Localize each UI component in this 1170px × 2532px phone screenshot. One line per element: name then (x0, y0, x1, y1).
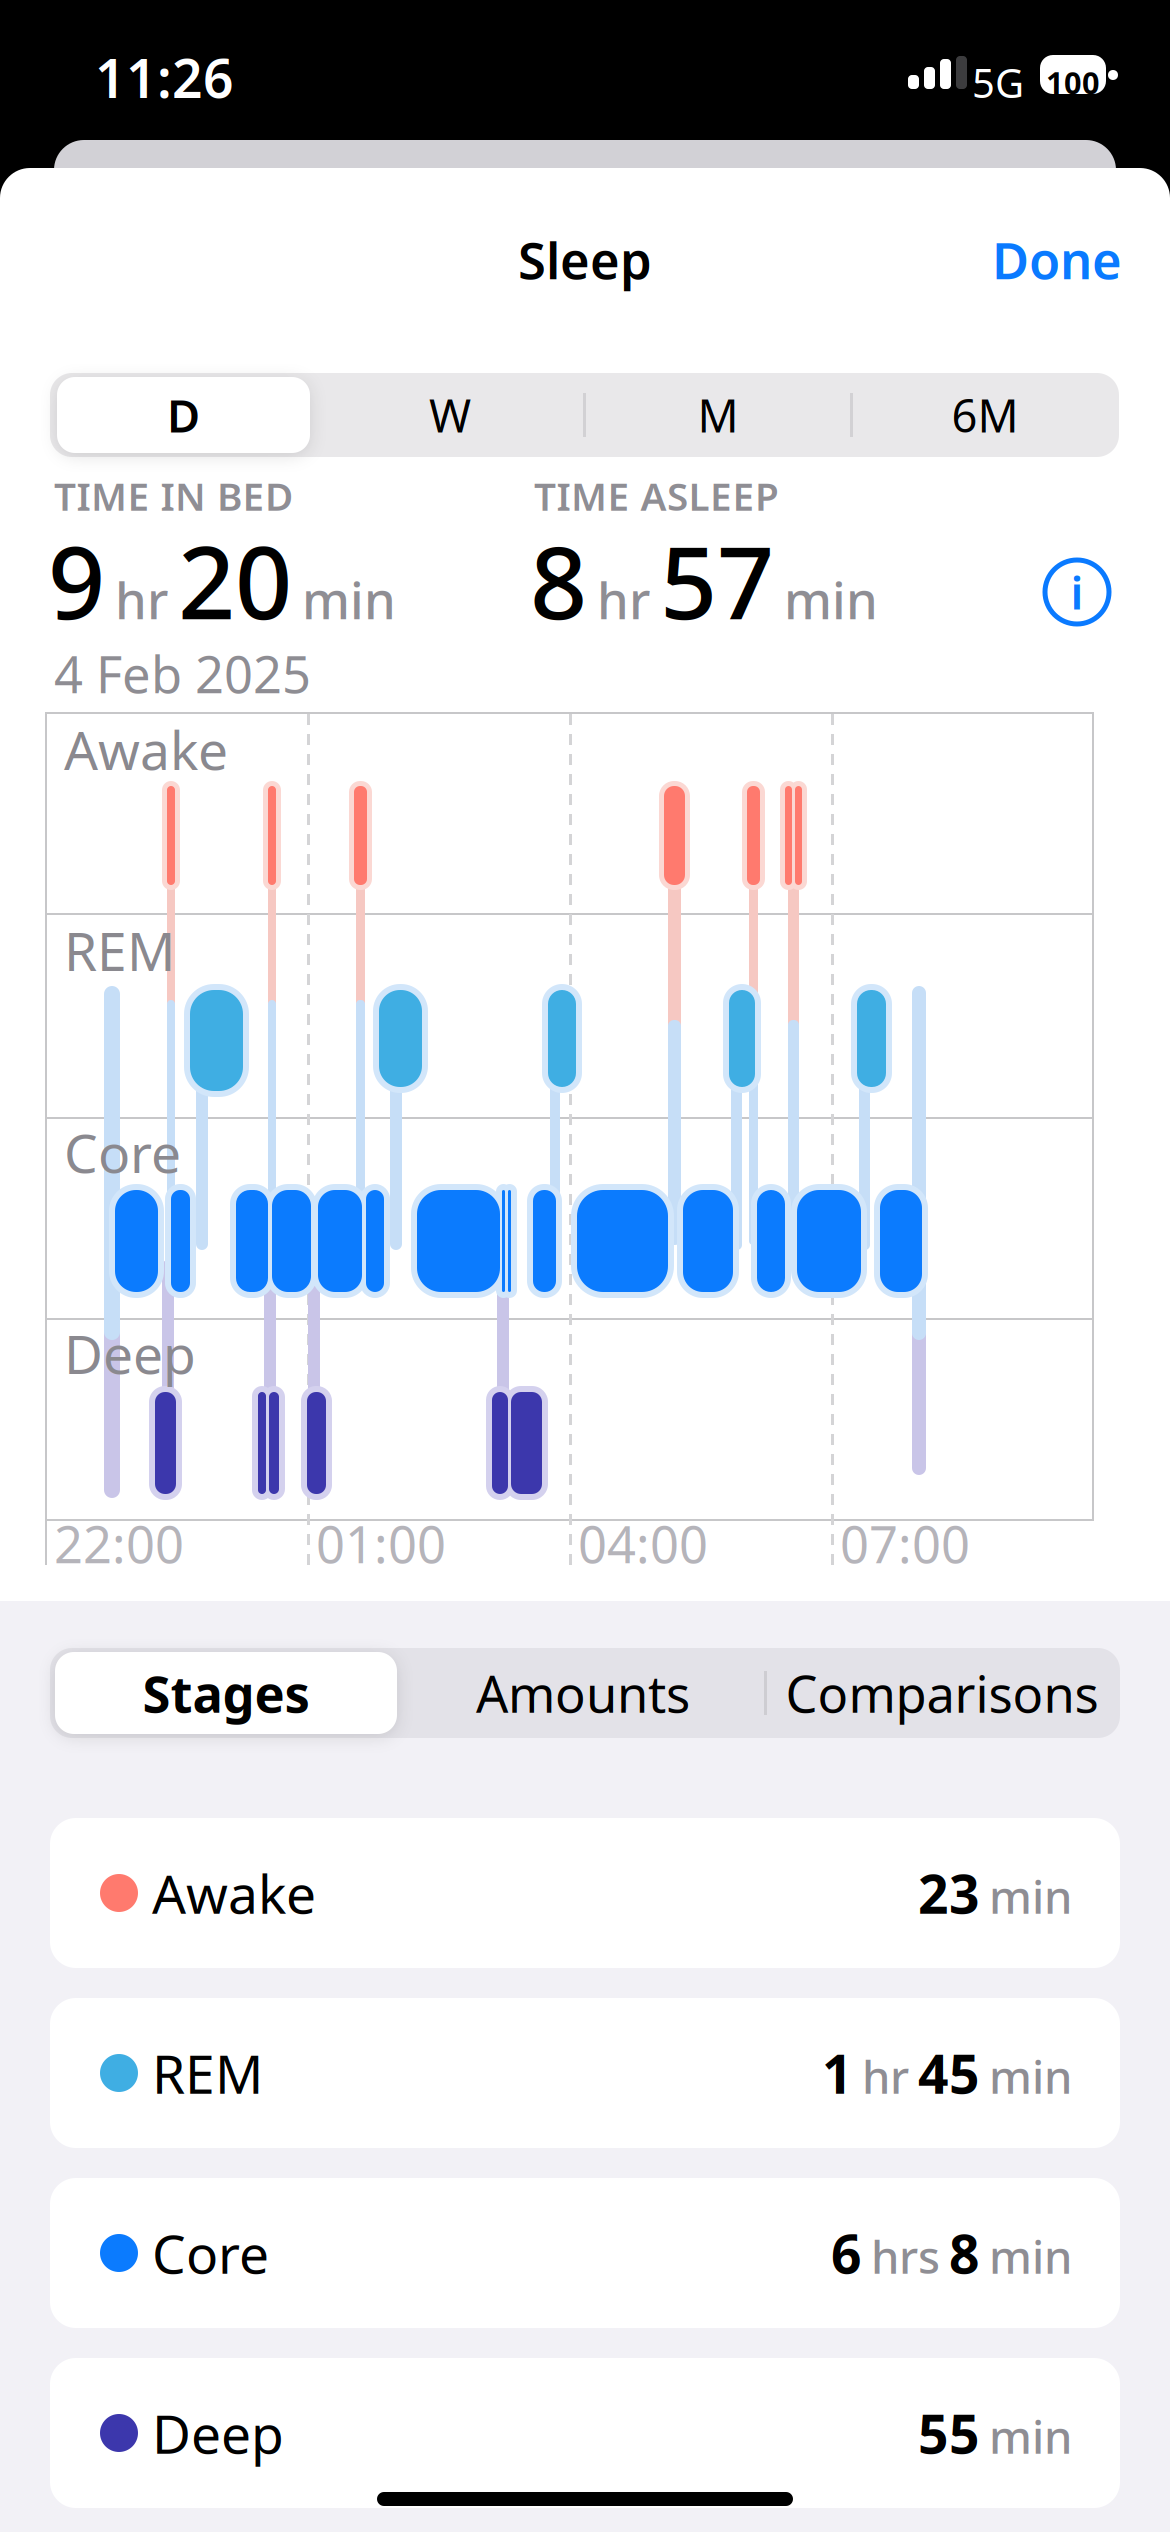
staticText: Deep (64, 1318, 196, 1389)
button[interactable]: REM (50, 1998, 1120, 2148)
staticText: Sleep (518, 226, 652, 293)
staticText: 45 (918, 2038, 980, 2108)
staticText: 20 (178, 514, 292, 647)
staticText: min (989, 2046, 1072, 2106)
staticText: Awake (64, 714, 228, 785)
button[interactable]: D (57, 377, 310, 453)
staticText: hr (597, 566, 650, 633)
staticText: min (989, 1866, 1072, 1926)
button[interactable]: 6M (853, 375, 1117, 455)
staticText: i (1070, 562, 1083, 622)
staticText: min (784, 566, 878, 633)
staticText: Done (992, 226, 1122, 293)
staticText: Comparisons (785, 1659, 1098, 1727)
button[interactable]: Stages (55, 1652, 397, 1734)
button[interactable]: W (318, 375, 582, 455)
staticText: hr (862, 2046, 909, 2106)
staticText: W (429, 385, 471, 445)
staticText: Core (152, 2218, 269, 2288)
button[interactable]: Deep (50, 2358, 1120, 2508)
button[interactable]: Done (992, 226, 1122, 293)
staticText: 100 (1046, 62, 1100, 103)
button[interactable]: M (586, 375, 850, 455)
staticText: 8 (949, 2218, 980, 2288)
button[interactable]: Amounts (403, 1651, 763, 1735)
staticText: 11:26 (95, 42, 234, 113)
staticText: 5G (972, 56, 1024, 109)
staticText: 8 (530, 514, 587, 647)
button[interactable]: Comparisons (768, 1651, 1116, 1735)
staticText: TIME ASLEEP (534, 470, 779, 521)
button[interactable]: About sleep data (1045, 560, 1109, 624)
staticText: Core (64, 1117, 181, 1188)
button[interactable]: Awake (50, 1818, 1120, 1968)
staticText: TIME IN BED (54, 470, 293, 521)
staticText: 07:00 (840, 1510, 970, 1577)
staticText: 9 (48, 514, 105, 647)
staticText: REM (152, 2038, 263, 2108)
staticText: 04:00 (578, 1510, 708, 1577)
staticText: Awake (152, 1858, 316, 1928)
staticText: Stages (142, 1659, 309, 1727)
staticText: hr (115, 566, 168, 633)
staticText: M (697, 385, 738, 445)
staticText: 22:00 (54, 1510, 184, 1577)
staticText: REM (64, 915, 175, 986)
staticText: 6M (951, 385, 1018, 445)
staticText: 6 (831, 2218, 862, 2288)
staticText: min (302, 566, 396, 633)
staticText: 57 (660, 514, 774, 647)
staticText: D (167, 385, 200, 445)
staticText: 23 (918, 1858, 980, 1928)
staticText: min (989, 2406, 1072, 2466)
staticText: Deep (152, 2398, 284, 2468)
button[interactable]: Core (50, 2178, 1120, 2328)
staticText: hrs (871, 2226, 940, 2286)
staticText: min (989, 2226, 1072, 2286)
staticText: Amounts (476, 1659, 690, 1727)
staticText: 01:00 (316, 1510, 446, 1577)
staticText: 55 (918, 2398, 980, 2468)
staticText: 1 (822, 2038, 853, 2108)
staticText: 4 Feb 2025 (54, 640, 311, 707)
